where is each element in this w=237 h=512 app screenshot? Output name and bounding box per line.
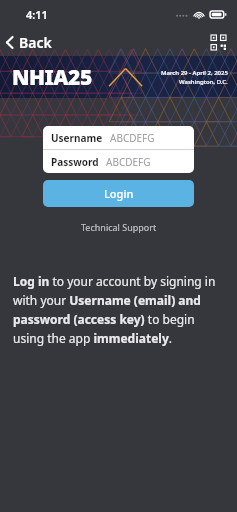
- button[interactable]: Scan QR code: [208, 32, 229, 53]
- button[interactable]: Username: [43, 126, 194, 149]
- button[interactable]: Password: [43, 150, 194, 173]
- staticText: Washington, D.C.: [179, 78, 228, 86]
- staticText: Login: [104, 186, 134, 201]
- button[interactable]: Login: [43, 180, 194, 207]
- staticText: Log in to your account by signing in wit…: [13, 273, 226, 346]
- staticText: 4:11: [26, 7, 48, 22]
- staticText: Username: [51, 131, 103, 145]
- button[interactable]: Back: [0, 30, 62, 55]
- staticText: NHIA25: [12, 63, 92, 92]
- staticText: Password: [51, 155, 99, 169]
- staticText: ABCDEFG: [110, 131, 155, 145]
- staticText: Technical Support: [81, 221, 157, 233]
- staticText: Back: [19, 33, 52, 52]
- staticText: March 29 - April 2, 2025: [161, 69, 228, 77]
- button[interactable]: Technical Support: [73, 218, 165, 236]
- staticText: ABCDEFG: [106, 155, 151, 169]
